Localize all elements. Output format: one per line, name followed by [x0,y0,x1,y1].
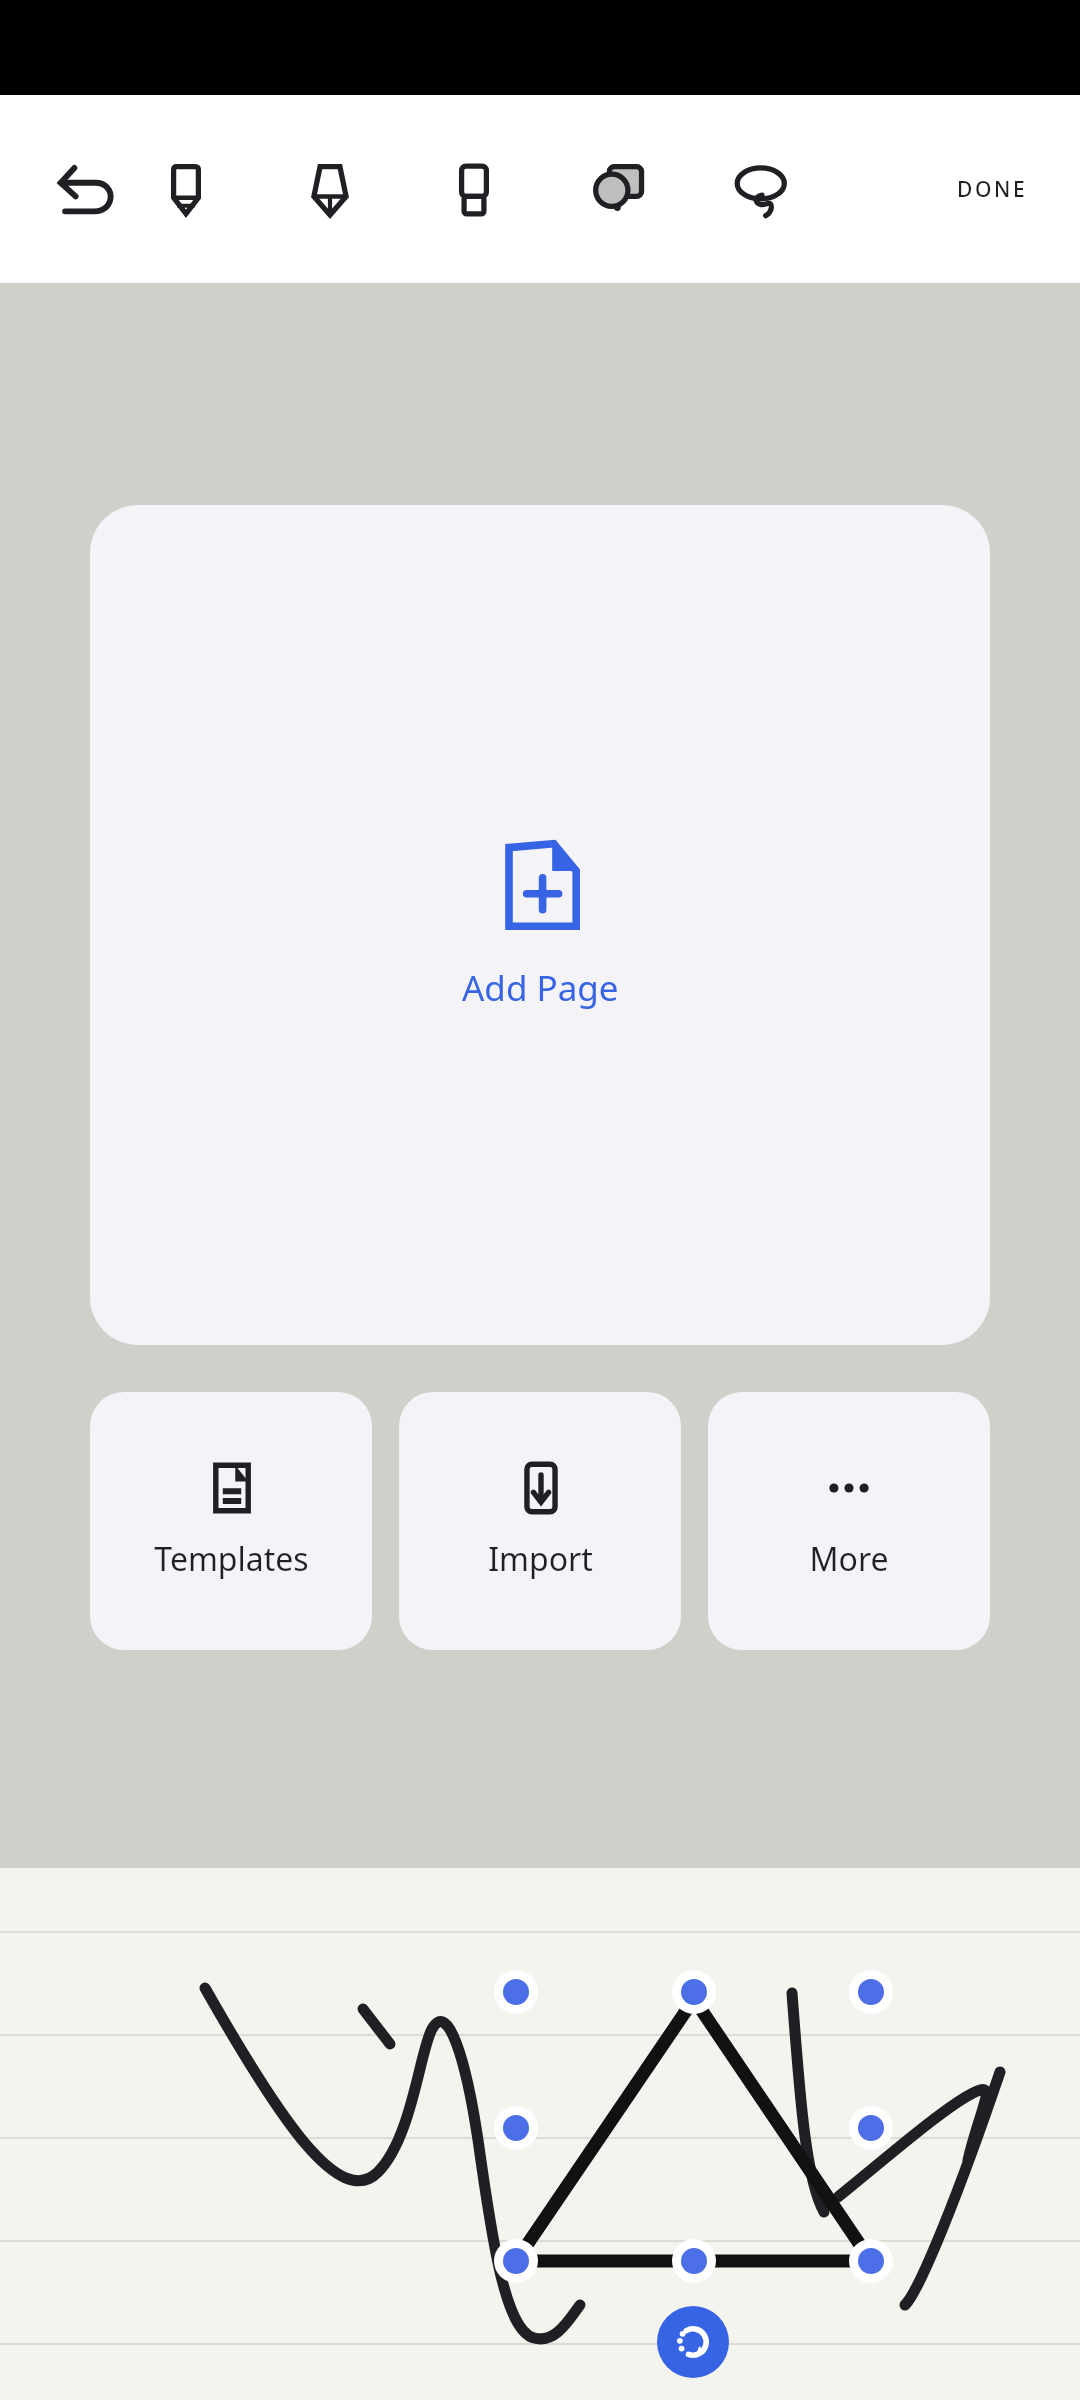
staticText: More [809,1537,889,1581]
button[interactable]: Highlighter [432,147,516,231]
button[interactable]: Add Page [90,505,990,1345]
button[interactable]: Reset shape [657,2306,729,2378]
button[interactable]: Import [399,1392,681,1650]
button[interactable]: Pen [288,147,372,231]
button[interactable]: Lasso select [720,147,804,231]
button[interactable]: Shapes [576,147,660,231]
button[interactable]: DONE [935,159,1050,220]
staticText: Import [488,1537,593,1581]
button[interactable]: More [708,1392,990,1650]
staticText: Templates [154,1537,309,1581]
staticText: Add Page [462,964,619,1012]
button[interactable]: Templates [90,1392,372,1650]
button[interactable]: Pencil [144,147,228,231]
button[interactable]: Undo [46,147,130,231]
staticText: DONE [957,175,1028,204]
